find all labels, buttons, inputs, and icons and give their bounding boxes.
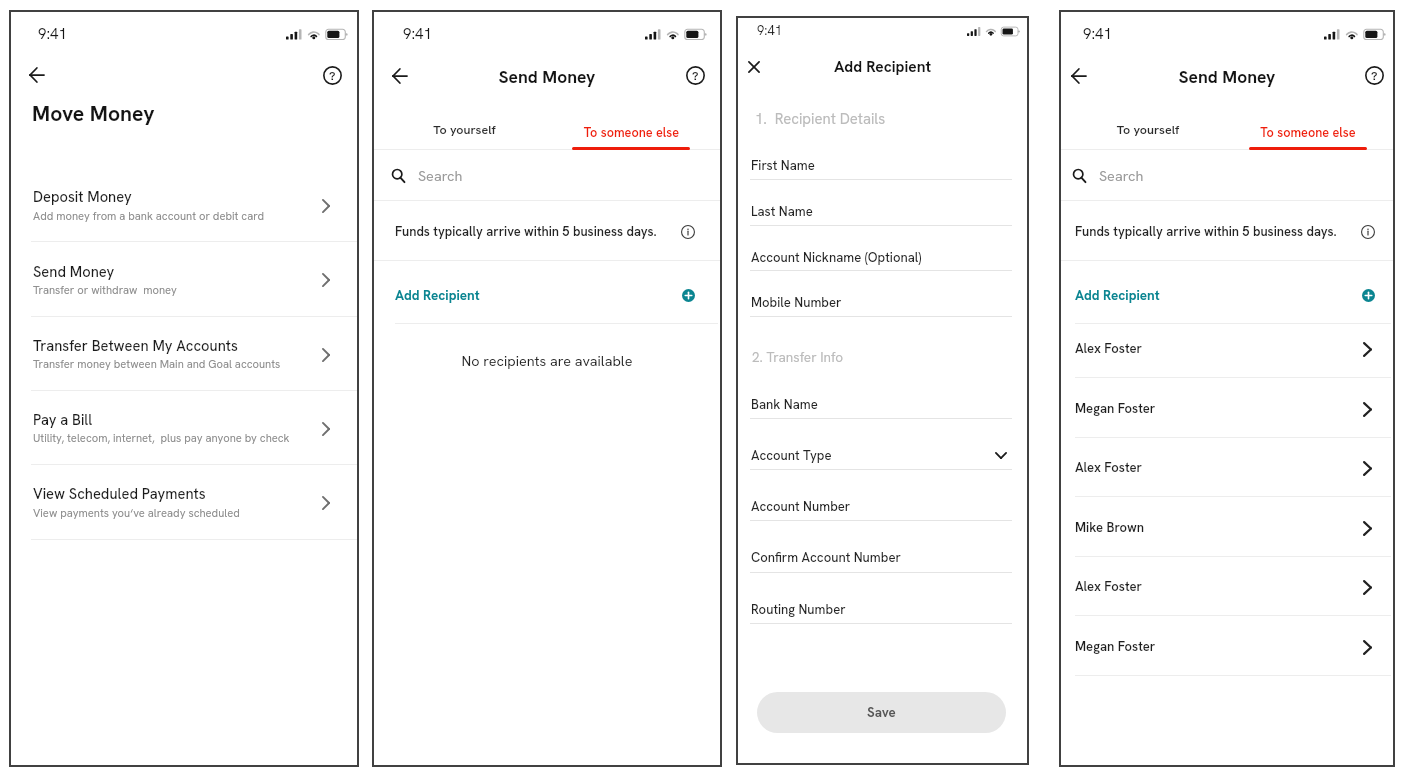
button[interactable] [9, 464, 359, 538]
button[interactable] [372, 110, 547, 148]
button[interactable] [9, 241, 359, 315]
staticText: To someone else [544, 124, 719, 141]
staticText: Mike Brown [1075, 519, 1145, 536]
staticText: Account Type [751, 447, 832, 464]
staticText: Utility, telecom, internet, plus pay any… [33, 431, 290, 446]
button[interactable]: Help [318, 61, 346, 89]
staticText: First Name [751, 157, 815, 174]
staticText: View Scheduled Payments [33, 484, 206, 503]
staticText: Pay a Bill [33, 410, 93, 429]
staticText: Mobile Number [751, 294, 842, 311]
staticText: Bank Name [751, 396, 818, 413]
staticText: Transfer Between My Accounts [33, 336, 238, 355]
staticText: Add Recipient [395, 286, 480, 304]
button[interactable] [372, 261, 722, 323]
staticText: 9:41 [38, 24, 67, 44]
staticText: ? [692, 67, 699, 83]
staticText: Search [418, 167, 463, 186]
staticText: Routing Number [751, 601, 846, 618]
staticText: 1. Recipient Details [755, 109, 886, 128]
button[interactable]: Close [740, 53, 768, 81]
button[interactable]: Information [1355, 219, 1381, 245]
button[interactable]: Help [1360, 61, 1388, 89]
staticText: 9:41 [1083, 24, 1112, 44]
staticText: Alex Foster [1075, 459, 1142, 476]
button[interactable] [547, 110, 722, 148]
button[interactable]: Save [757, 692, 1006, 733]
staticText: 9:41 [403, 24, 432, 44]
staticText: Account Nickname (Optional) [751, 249, 922, 266]
staticText: Transfer or withdraw money [33, 283, 177, 298]
staticText: Account Number [751, 498, 851, 515]
button[interactable] [1227, 110, 1395, 148]
button[interactable]: Back [383, 61, 416, 91]
staticText: To someone else [1224, 124, 1392, 141]
staticText: Alex Foster [1075, 578, 1142, 595]
staticText: Move Money [32, 100, 155, 128]
button[interactable]: Back [20, 60, 53, 90]
staticText: Transfer money between Main and Goal acc… [33, 357, 281, 372]
staticText: Search [1099, 167, 1144, 186]
button[interactable] [1059, 150, 1395, 200]
staticText: Send Money [372, 66, 722, 89]
button[interactable]: Back [1062, 61, 1095, 91]
button[interactable] [1059, 496, 1395, 556]
staticText: Send Money [1059, 66, 1395, 89]
button[interactable] [9, 316, 359, 390]
button[interactable] [1059, 437, 1395, 497]
staticText: Last Name [751, 203, 813, 220]
staticText: Megan Foster [1075, 638, 1156, 655]
staticText: Megan Foster [1075, 400, 1156, 417]
staticText: Send Money [33, 262, 115, 281]
staticText: 9:41 [757, 22, 782, 39]
staticText: 2. Transfer Info [752, 348, 843, 366]
staticText: Alex Foster [1075, 340, 1142, 357]
button[interactable]: Add recipient [675, 282, 701, 308]
staticText: Funds typically arrive within 5 business… [1075, 223, 1337, 240]
staticText: To yourself [1064, 121, 1232, 137]
button[interactable] [1059, 110, 1227, 148]
staticText: Funds typically arrive within 5 business… [395, 223, 657, 240]
button[interactable] [1059, 318, 1395, 378]
staticText: View payments you‘ve already scheduled [33, 506, 240, 521]
button[interactable] [1059, 556, 1395, 616]
button[interactable] [9, 390, 359, 464]
staticText: Save [867, 704, 896, 721]
button[interactable] [9, 167, 359, 241]
staticText: To yourself [377, 121, 552, 137]
staticText: Add Recipient [736, 56, 1029, 76]
button[interactable]: Help [681, 61, 709, 89]
button[interactable] [1059, 261, 1395, 323]
staticText: ? [1371, 67, 1378, 83]
button[interactable] [1059, 615, 1395, 675]
staticText: Add money from a bank account or debit c… [33, 209, 264, 224]
button[interactable] [1059, 377, 1395, 437]
staticText: Add Recipient [1075, 286, 1160, 304]
staticText: ? [329, 67, 336, 83]
staticText: No recipients are available [372, 352, 722, 371]
button[interactable]: Information [675, 219, 701, 245]
button[interactable]: Add recipient [1355, 282, 1381, 308]
staticText: Deposit Money [33, 187, 132, 206]
staticText: Confirm Account Number [751, 549, 901, 566]
button[interactable] [372, 150, 722, 200]
